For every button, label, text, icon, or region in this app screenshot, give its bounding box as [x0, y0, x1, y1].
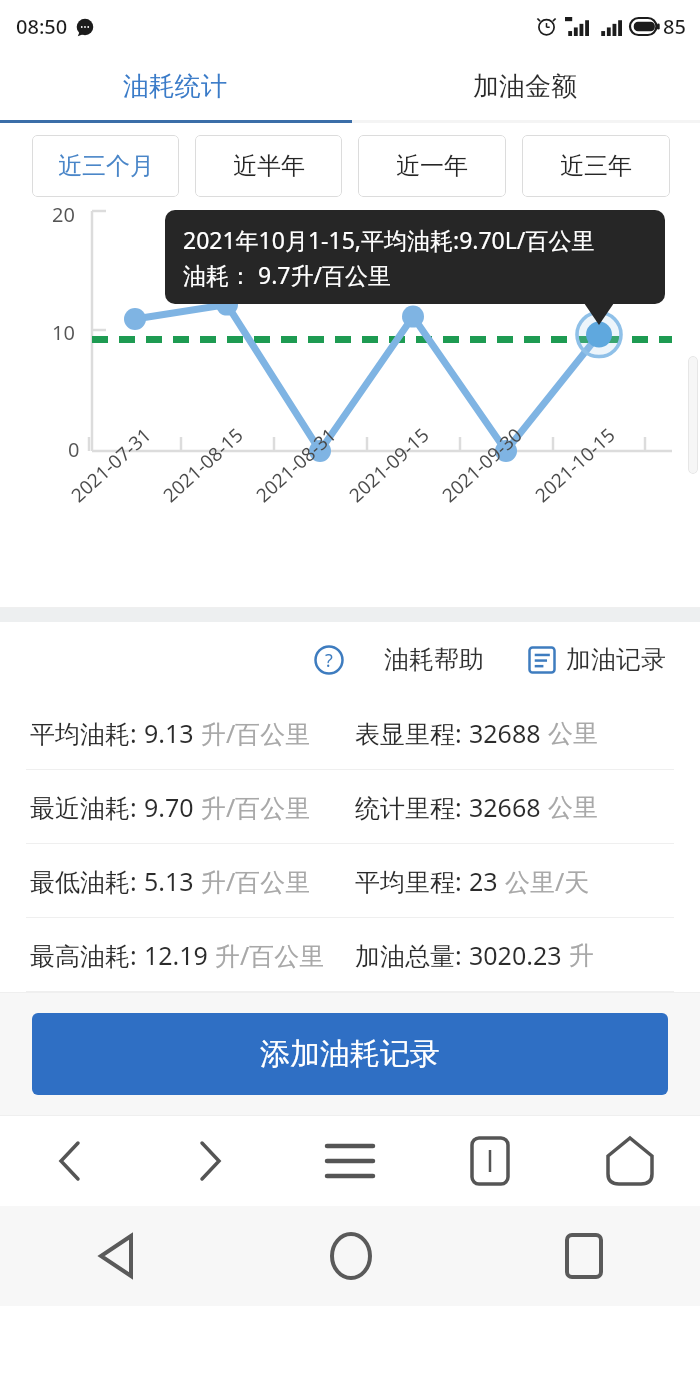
staticText: 加油记录 [566, 644, 666, 675]
staticText: 加油总量: [355, 938, 469, 972]
staticText: 公里 [548, 792, 598, 823]
button[interactable]: 加油金额 [350, 52, 700, 120]
button[interactable]: Back [0, 1206, 234, 1306]
button[interactable]: 近三个月 [32, 135, 179, 197]
staticText: 油耗帮助 [384, 644, 484, 675]
staticText: 油耗： 9.7升/百公里 [183, 259, 392, 290]
staticText: 近三年 [560, 151, 632, 181]
staticText: 添加油耗记录 [260, 1035, 440, 1073]
staticText: 9.13 [144, 716, 201, 750]
staticText: 升/百公里 [201, 790, 311, 824]
staticText: 2021-09-30 [399, 422, 527, 542]
button[interactable]: 油耗统计 [0, 52, 350, 120]
staticText: 2021年10月1-15,平均油耗:9.70L/百公里 [183, 224, 595, 255]
staticText: 升 [569, 940, 594, 971]
staticText: 9.70 [144, 790, 201, 824]
staticText: 平均里程: [355, 864, 469, 898]
button[interactable]: Back [0, 1116, 140, 1206]
button[interactable]: Recents [467, 1206, 700, 1306]
staticText: 平均油耗: [30, 716, 144, 750]
staticText: 最低油耗: [30, 864, 144, 898]
button[interactable]: Tabs [420, 1116, 560, 1206]
staticText: 20 [52, 201, 75, 228]
staticText: 2021-08-31 [213, 422, 341, 542]
staticText: 2021-07-31 [28, 422, 156, 542]
staticText: 近半年 [233, 151, 305, 181]
staticText: 85 [663, 13, 686, 40]
button[interactable]: Home [234, 1206, 467, 1306]
staticText: 升/百公里 [201, 716, 311, 750]
button[interactable]: 近一年 [358, 135, 506, 197]
staticText: 3020.23 [469, 938, 569, 972]
staticText: 加油金额 [473, 70, 577, 103]
staticText: 0 [68, 436, 80, 463]
staticText: 表显里程: [355, 716, 469, 750]
button[interactable]: 加油记录 [522, 638, 672, 681]
staticText: 最高油耗: [30, 938, 144, 972]
staticText: 23 [469, 864, 505, 898]
staticText: 近三个月 [58, 151, 154, 181]
staticText: 08:50 [16, 13, 68, 40]
button[interactable]: Home [560, 1116, 700, 1206]
staticText: 近一年 [396, 151, 468, 181]
staticText: 2021-09-15 [306, 422, 434, 542]
staticText: ? [325, 648, 333, 673]
staticText: 2021-10-15 [492, 422, 620, 542]
staticText: 5.13 [144, 864, 201, 898]
staticText: 32668 [469, 790, 548, 824]
staticText: 最近油耗: [30, 790, 144, 824]
staticText: 公里/天 [505, 864, 590, 898]
button[interactable]: 近三年 [522, 135, 670, 197]
button[interactable]: 近半年 [195, 135, 342, 197]
staticText: 2021-08-15 [120, 422, 248, 542]
button[interactable]: ? [308, 638, 490, 681]
staticText: 12.19 [144, 938, 215, 972]
staticText: 升/百公里 [201, 864, 311, 898]
staticText: 10 [52, 319, 75, 346]
staticText: 32688 [469, 716, 548, 750]
staticText: 油耗统计 [123, 70, 227, 103]
button[interactable]: Forward [140, 1116, 280, 1206]
staticText: 统计里程: [355, 790, 469, 824]
staticText: 公里 [548, 718, 598, 749]
staticText: 升/百公里 [215, 938, 325, 972]
button[interactable]: Menu [280, 1116, 420, 1206]
button[interactable]: 添加油耗记录 [32, 1013, 668, 1095]
